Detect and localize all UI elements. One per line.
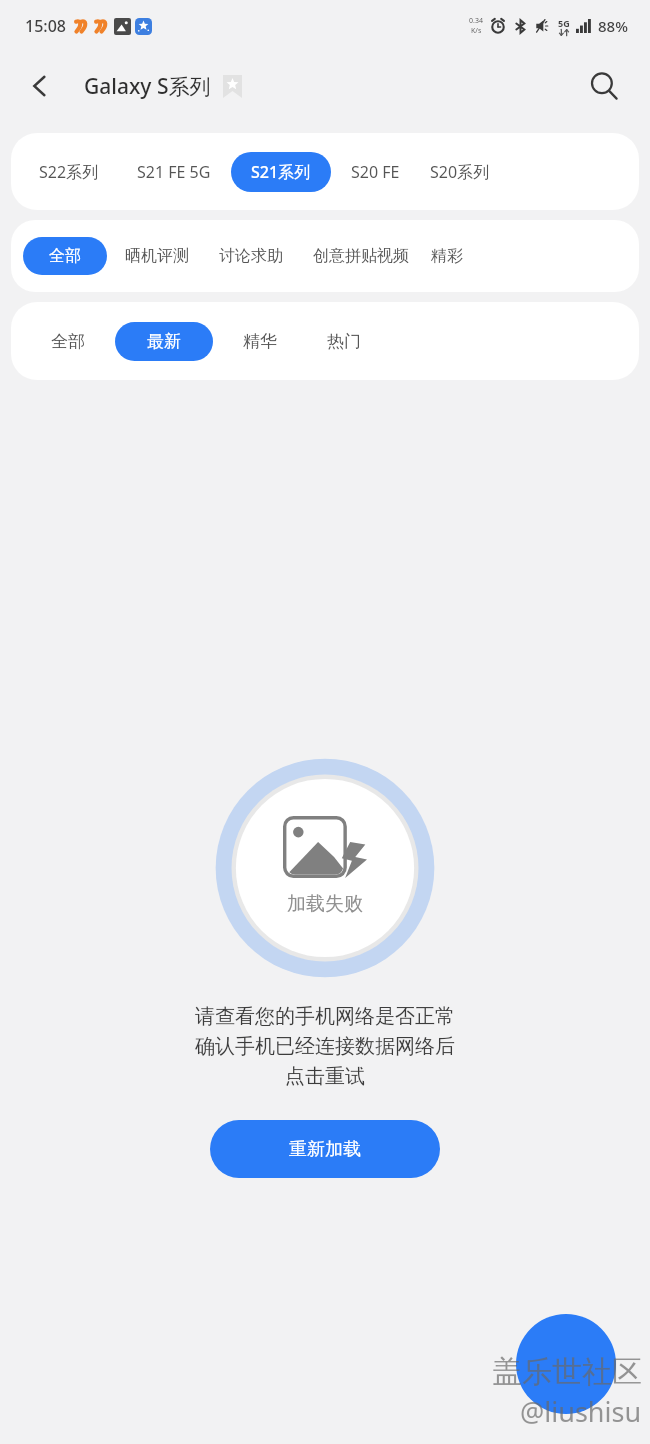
staticText: S20 FE	[351, 161, 400, 183]
button[interactable]: 全部	[45, 322, 91, 361]
staticText: K/s	[471, 26, 482, 36]
staticText: 精华	[243, 331, 277, 352]
staticText: 全部	[51, 331, 85, 352]
button[interactable]: Back	[12, 58, 68, 114]
staticText: S22系列	[39, 161, 99, 183]
staticText: 88%	[598, 16, 628, 36]
button[interactable]: 创意拼贴视频	[305, 237, 417, 275]
button[interactable]: S21 FE 5G	[129, 152, 219, 192]
staticText: 热门	[327, 331, 361, 352]
button[interactable]: 最新	[115, 322, 213, 361]
button[interactable]: S22系列	[19, 152, 119, 192]
button[interactable]: S20 FE	[341, 152, 410, 192]
staticText: @liushisu	[520, 1393, 642, 1430]
staticText: Galaxy S系列	[84, 72, 211, 101]
staticText: 精彩	[431, 246, 463, 266]
button[interactable]: S21系列	[231, 152, 331, 192]
button[interactable]: 精华	[237, 322, 283, 361]
staticText: S20系列	[430, 161, 490, 183]
button[interactable]: Search	[576, 58, 632, 114]
staticText: 晒机评测	[125, 246, 189, 266]
button[interactable]: 精彩	[427, 237, 467, 275]
staticText: S21 FE 5G	[137, 161, 211, 183]
staticText: 盖乐世社区	[492, 1353, 642, 1391]
button[interactable]: 晒机评测	[117, 237, 197, 275]
staticText: 0.34	[469, 16, 483, 26]
button[interactable]: 热门	[321, 322, 367, 361]
staticText: 最新	[147, 331, 181, 352]
button[interactable]: 全部	[23, 237, 107, 275]
staticText: 讨论求助	[219, 246, 283, 266]
button[interactable]: S20系列	[422, 152, 498, 192]
staticText: 15:08	[25, 15, 66, 37]
staticText: 5G	[558, 17, 570, 29]
staticText: S21系列	[251, 161, 311, 183]
staticText: 请查看您的手机网络是否正常 确认手机已经连接数据网络后 点击重试	[195, 1004, 455, 1089]
staticText: 创意拼贴视频	[313, 246, 409, 266]
staticText: 重新加载	[289, 1138, 361, 1161]
button[interactable]: 重新加载	[210, 1120, 440, 1178]
staticText: 全部	[49, 246, 81, 266]
staticText: 加载失败	[287, 892, 363, 916]
button[interactable]: 讨论求助	[211, 237, 291, 275]
